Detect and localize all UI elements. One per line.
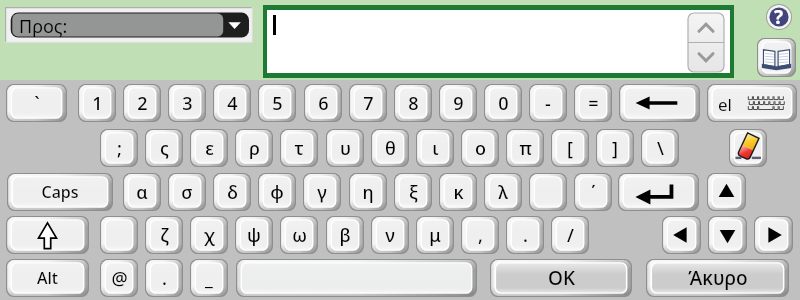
button[interactable]: θ <box>371 129 409 167</box>
button[interactable]: ζ <box>145 216 183 254</box>
staticText: 1 <box>92 91 103 116</box>
staticText: μ <box>429 223 441 248</box>
button[interactable]: μ <box>416 216 454 254</box>
staticText: χ <box>204 223 215 248</box>
button[interactable]: 6 <box>304 84 342 122</box>
button[interactable]: γ <box>303 173 341 211</box>
button[interactable]: 4 <box>213 84 251 122</box>
staticText: σ <box>181 180 193 205</box>
button[interactable]: α <box>123 173 161 211</box>
button[interactable]: η <box>349 173 387 211</box>
button[interactable]: ΄ <box>574 173 612 211</box>
button[interactable]: - <box>529 84 567 122</box>
staticText: τ <box>294 136 304 161</box>
button[interactable]: ρ <box>235 129 273 167</box>
button[interactable]: = <box>574 84 612 122</box>
staticText: ν <box>385 223 395 248</box>
button[interactable]: Right <box>754 216 793 254</box>
button[interactable] <box>529 173 567 211</box>
staticText: λ <box>498 180 508 205</box>
button[interactable]: 3 <box>168 84 206 122</box>
button[interactable]: 1 <box>78 84 116 122</box>
button[interactable]: . <box>145 259 183 297</box>
staticText: α <box>136 180 148 205</box>
button[interactable]: υ <box>326 129 364 167</box>
button[interactable]: 8 <box>394 84 432 122</box>
button[interactable]: ο <box>461 129 499 167</box>
button[interactable]: Άκυρο <box>646 259 789 297</box>
button[interactable]: , <box>461 216 499 254</box>
button[interactable]: 5 <box>258 84 296 122</box>
staticText: ζ <box>160 223 169 248</box>
staticText: / <box>567 223 574 248</box>
staticText: Προς: <box>19 14 68 39</box>
button[interactable]: Alt <box>6 259 89 297</box>
button[interactable]: κ <box>439 173 477 211</box>
staticText: γ <box>317 180 327 205</box>
staticText: [ <box>567 136 573 161</box>
button[interactable]: 9 <box>439 84 477 122</box>
button[interactable]: Address book <box>757 38 796 77</box>
button[interactable]: ] <box>596 129 634 167</box>
button[interactable]: ι <box>416 129 454 167</box>
button[interactable]: _ <box>190 259 228 297</box>
button[interactable]: ` <box>6 84 67 122</box>
button[interactable]: ν <box>371 216 409 254</box>
staticText: 8 <box>408 91 419 116</box>
staticText: θ <box>385 136 396 161</box>
button[interactable]: Down <box>708 216 747 254</box>
button[interactable]: χ <box>190 216 228 254</box>
staticText: β <box>339 223 351 248</box>
button[interactable]: / <box>551 216 589 254</box>
button[interactable] <box>100 216 138 254</box>
staticText: el <box>718 93 732 116</box>
button[interactable]: Left <box>662 216 701 254</box>
button[interactable]: OK <box>490 259 632 297</box>
staticText: 3 <box>182 91 193 116</box>
button[interactable]: ω <box>280 216 318 254</box>
button[interactable]: Προς: <box>5 7 253 43</box>
staticText: 9 <box>453 91 464 116</box>
button[interactable]: Caps <box>7 173 113 211</box>
staticText: φ <box>270 180 284 205</box>
button[interactable]: ξ <box>394 173 432 211</box>
button[interactable]: 0 <box>484 84 522 122</box>
staticText: ε <box>205 136 214 161</box>
button[interactable]: ε <box>190 129 228 167</box>
button[interactable]: 2 <box>123 84 161 122</box>
button[interactable]: Backspace <box>619 84 700 122</box>
button[interactable] <box>263 5 734 78</box>
staticText: η <box>362 180 374 205</box>
button[interactable]: σ <box>168 173 206 211</box>
button[interactable]: π <box>506 129 544 167</box>
button[interactable]: Shift <box>6 216 89 254</box>
staticText: . <box>162 266 167 291</box>
button[interactable]: Clear <box>729 129 767 167</box>
button[interactable]: Help <box>766 4 792 30</box>
button[interactable]: 7 <box>349 84 387 122</box>
staticText: _ <box>205 266 213 291</box>
button[interactable]: β <box>326 216 364 254</box>
button[interactable]: Space <box>236 259 477 297</box>
staticText: OK <box>548 265 575 291</box>
button[interactable]: ψ <box>235 216 273 254</box>
button[interactable]: Scroll <box>688 13 724 72</box>
button[interactable]: ς <box>145 129 183 167</box>
button[interactable]: [ <box>551 129 589 167</box>
button[interactable]: @ <box>100 259 138 297</box>
button[interactable]: Language: el <box>707 84 797 122</box>
staticText: = <box>588 91 599 116</box>
staticText: ; <box>117 136 122 161</box>
button[interactable]: ; <box>100 129 138 167</box>
staticText: 4 <box>227 91 238 116</box>
button[interactable]: λ <box>484 173 522 211</box>
button[interactable]: . <box>506 216 544 254</box>
button[interactable]: \ <box>641 129 679 167</box>
staticText: ψ <box>247 223 261 248</box>
button[interactable]: Up <box>707 173 746 211</box>
staticText: \ <box>657 136 664 161</box>
button[interactable]: τ <box>280 129 318 167</box>
button[interactable]: φ <box>258 173 296 211</box>
button[interactable]: Enter <box>618 173 699 211</box>
button[interactable]: δ <box>213 173 251 211</box>
